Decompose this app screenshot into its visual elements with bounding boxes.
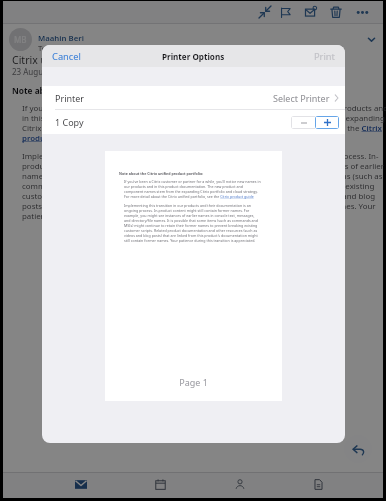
staticText: Maahin Beri xyxy=(38,33,84,44)
staticText: Citrix unified product portfolio xyxy=(12,53,162,67)
button[interactable]: Mark unread xyxy=(300,1,322,23)
staticText: If you've been a Citrix customer or part… xyxy=(124,179,261,199)
button[interactable]: Cancel xyxy=(42,46,91,67)
button[interactable]: Flag xyxy=(274,1,296,23)
button[interactable]: Collapse header xyxy=(363,31,379,47)
staticText: Note about the Citrix unified product po… xyxy=(119,171,204,176)
staticText: Note about the Citrix unified product po… xyxy=(12,85,207,96)
button[interactable]: Printer xyxy=(42,86,345,110)
staticText: Implementing this transition in our prod… xyxy=(22,151,384,221)
button[interactable]: Files xyxy=(298,472,338,496)
staticText: MB xyxy=(14,34,27,45)
staticText: Page 1 xyxy=(179,376,208,388)
staticText: 23 August 2023 at 14:22 xyxy=(12,66,103,77)
button[interactable]: Collapse xyxy=(254,1,276,23)
staticText: Implementing this transition in our prod… xyxy=(124,203,258,243)
staticText: Print xyxy=(314,50,335,63)
staticText: Cancel xyxy=(52,50,81,63)
staticText: Printer xyxy=(55,92,85,104)
button[interactable]: Calendar xyxy=(140,472,180,496)
button[interactable]: Decrease copies xyxy=(292,117,315,128)
button[interactable]: People xyxy=(220,472,260,496)
button[interactable]: Delete xyxy=(325,1,347,23)
button[interactable]: Print xyxy=(304,46,345,67)
staticText: Select Printer xyxy=(273,92,330,104)
staticText: Printer Options xyxy=(162,51,225,62)
staticText: To: Documentation Feedback xyxy=(38,43,142,53)
staticText: If you've been a Citrix customer or part… xyxy=(22,103,386,143)
button[interactable]: More xyxy=(351,1,373,23)
staticText: 1 Copy xyxy=(55,116,84,128)
button[interactable]: Mail xyxy=(61,472,101,496)
button[interactable]: Increase copies xyxy=(316,117,338,128)
button[interactable]: Reply xyxy=(344,435,372,463)
